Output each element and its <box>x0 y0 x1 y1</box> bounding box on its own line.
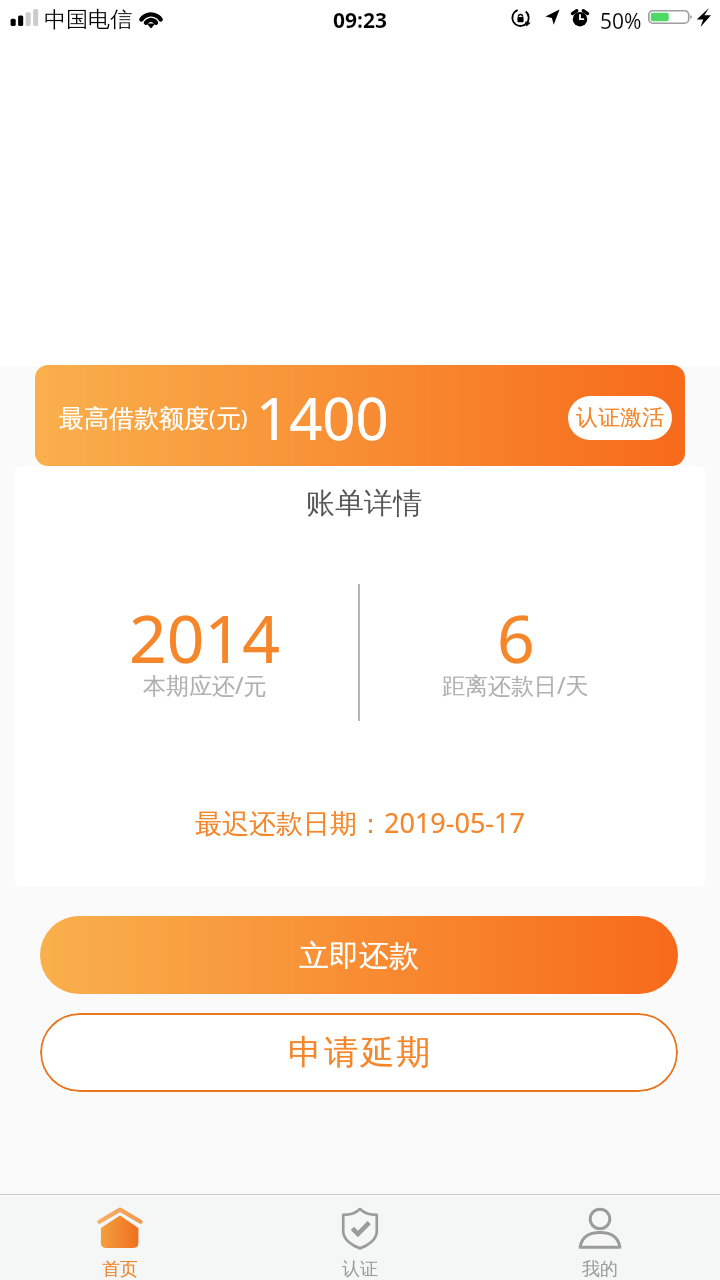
staticText: 最迟还款日期：2019-05-17 <box>195 804 525 841</box>
staticText: 立即还款 <box>299 937 419 975</box>
staticText: 2014 <box>129 592 281 682</box>
staticText: 中国电信 <box>44 6 132 34</box>
staticText: ) <box>241 404 248 433</box>
other: Rotation lock <box>511 8 532 28</box>
staticText: 最高借款额度 <box>59 403 209 434</box>
staticText: 50% <box>600 7 642 36</box>
staticText: 我的 <box>582 1258 618 1280</box>
button[interactable]: 认证激活 <box>568 396 672 440</box>
button[interactable]: 最高借款额度 <box>35 365 685 466</box>
staticText: 账单详情 <box>306 485 422 522</box>
staticText: ( <box>209 404 216 433</box>
staticText: 认证激活 <box>576 404 664 432</box>
staticText: 申请延期 <box>288 1031 433 1074</box>
button[interactable]: 申请延期 <box>40 1013 678 1092</box>
button[interactable]: 我的 <box>480 1196 720 1280</box>
button[interactable]: 立即还款 <box>40 916 678 994</box>
staticText: 1400 <box>256 378 389 457</box>
staticText: 本期应还/元 <box>143 669 267 700</box>
button[interactable]: 认证 <box>240 1196 480 1280</box>
staticText: 距离还款日/天 <box>442 669 589 700</box>
staticText: 09:23 <box>333 6 387 35</box>
staticText: 6 <box>497 592 535 682</box>
staticText: 元 <box>216 403 241 434</box>
staticText: 认证 <box>342 1258 378 1280</box>
button[interactable]: 首页 <box>0 1196 240 1280</box>
staticText: 首页 <box>102 1258 138 1280</box>
